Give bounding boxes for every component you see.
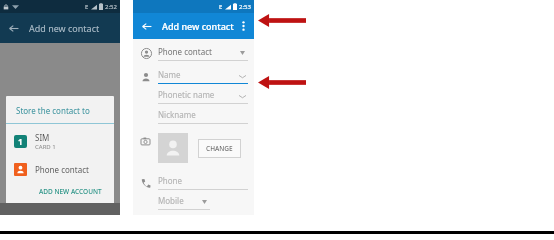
button[interactable]: ADD NEW ACCOUNT [6,183,114,205]
staticText: Phone [158,175,248,186]
staticText: Phone contact [158,46,240,57]
button[interactable]: CHANGE [199,140,240,157]
button[interactable]: Phone contact [6,156,114,183]
staticText: SIM [35,132,50,143]
staticText: Store the contact to [16,105,90,116]
button[interactable]: Phone contact [158,46,248,61]
staticText: E [219,3,223,11]
staticText: Name [158,69,239,80]
staticText: Mobile [158,195,202,206]
button[interactable]: Back [141,21,152,32]
staticText: ADD NEW ACCOUNT [39,187,102,196]
staticText: 2:52 [105,3,117,11]
staticText: Phone contact [35,164,89,175]
staticText: 1 [18,136,23,147]
button[interactable]: Phone [158,175,248,190]
staticText: CARD 1 [35,143,56,151]
staticText: CHANGE [206,144,233,153]
staticText: 2:53 [239,3,251,11]
button[interactable]: Contact photo [158,133,188,163]
button[interactable]: Mobile [158,195,210,210]
button[interactable]: 1 [6,124,114,156]
button[interactable]: Phonetic name [158,89,248,104]
staticText: Add new contact [29,22,100,34]
staticText: Nickname [158,109,248,120]
staticText: Phonetic name [158,89,239,100]
button[interactable]: Back [8,23,19,34]
button[interactable]: Nickname [158,109,248,124]
button[interactable]: Name [158,69,248,84]
staticText: E [85,3,89,11]
staticText: Add new contact [162,20,234,32]
button[interactable]: More options [239,19,248,33]
